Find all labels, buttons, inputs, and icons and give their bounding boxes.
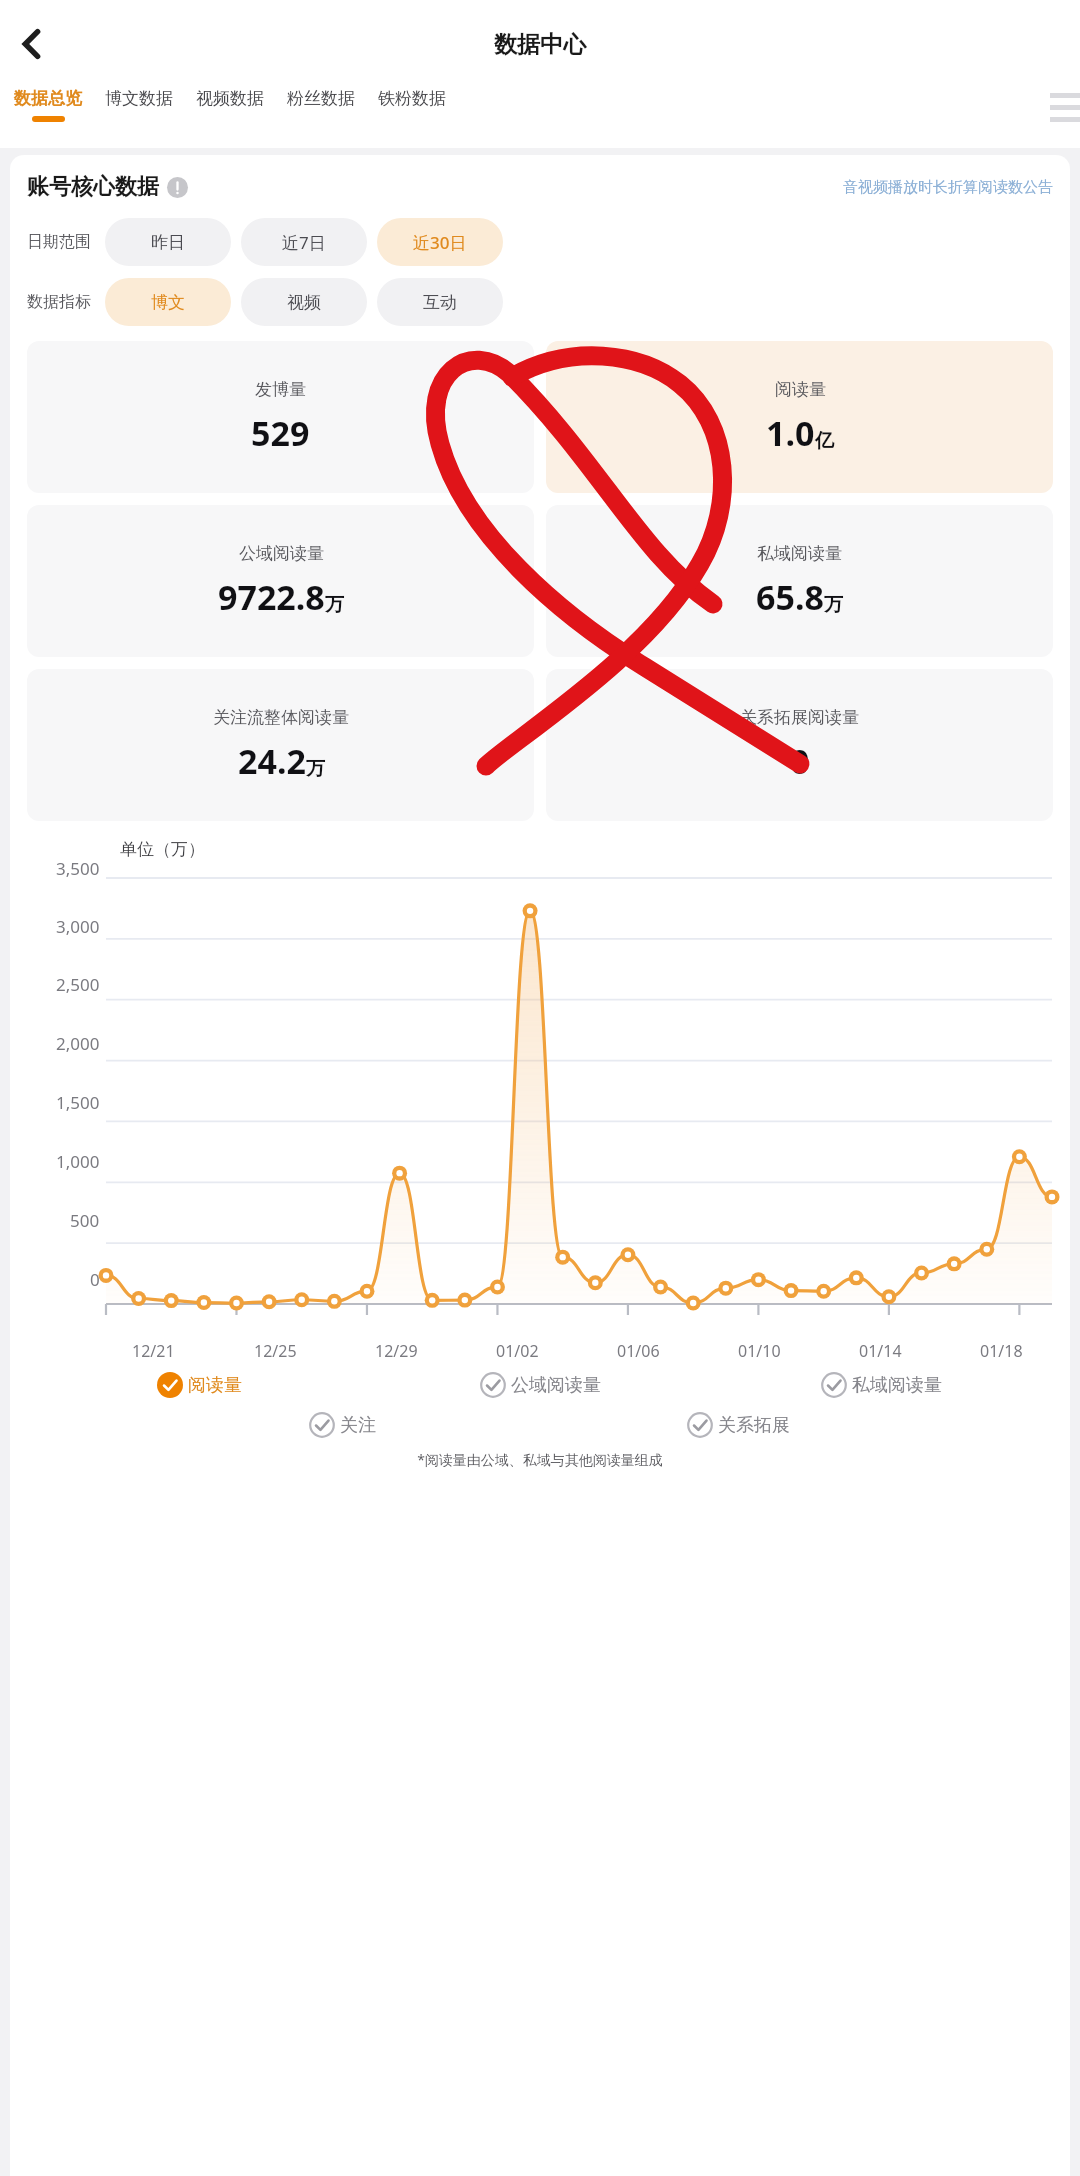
button[interactable]: 关系拓展 [568, 1412, 909, 1438]
button[interactable]: 视频数据 [196, 88, 264, 109]
staticText: 私域阅读量 [757, 543, 842, 564]
staticText: 01/06 [617, 1340, 660, 1362]
button[interactable]: 昨日 [105, 218, 231, 266]
staticText: 阅读量 [188, 1374, 242, 1397]
staticText: 粉丝数据 [287, 88, 355, 109]
staticText: 0 [90, 1268, 100, 1291]
button[interactable]: 公域阅读量 [370, 1372, 711, 1398]
staticText: 01/10 [738, 1340, 781, 1362]
staticText: 近30日 [413, 231, 467, 254]
staticText: 博文数据 [105, 88, 173, 109]
staticText: 万 [824, 593, 843, 617]
staticText: 关注 [340, 1414, 376, 1437]
staticText: 12/29 [375, 1340, 418, 1362]
button[interactable]: 博文数据 [105, 88, 173, 109]
staticText: 65.8 [756, 574, 824, 620]
staticText: 万 [325, 593, 344, 617]
staticText: 01/18 [980, 1340, 1023, 1362]
staticText: 关系拓展阅读量 [740, 707, 859, 728]
staticText: 01/02 [496, 1340, 539, 1362]
staticText: 数据指标 [27, 292, 91, 312]
staticText: 单位（万） [120, 839, 205, 860]
button[interactable]: 视频 [241, 278, 367, 326]
button[interactable]: 阅读量 [28, 1372, 370, 1398]
staticText: 01/14 [859, 1340, 902, 1362]
button[interactable]: 近30日 [377, 218, 503, 266]
staticText: 博文 [151, 292, 185, 313]
staticText: 关注流整体阅读量 [213, 707, 349, 728]
staticText: 日期范围 [27, 232, 91, 252]
staticText: 近7日 [282, 231, 326, 254]
staticText: 529 [251, 410, 310, 456]
staticText: *阅读量由公域、私域与其他阅读量组成 [10, 1450, 1070, 1469]
button[interactable]: More tabs [1050, 93, 1080, 129]
button[interactable]: 音视频播放时长折算阅读数公告 [843, 178, 1053, 197]
staticText: 2,000 [56, 1032, 100, 1055]
staticText: 12/21 [132, 1340, 175, 1362]
staticText: 视频数据 [196, 88, 264, 109]
staticText: 1,500 [56, 1091, 100, 1114]
button[interactable]: 近7日 [241, 218, 367, 266]
button[interactable]: 私域阅读量 [711, 1372, 1052, 1398]
staticText: 3,500 [56, 857, 100, 880]
button[interactable]: Info [167, 177, 188, 198]
button[interactable]: 公域阅读量 [27, 505, 534, 657]
button[interactable]: Back [4, 16, 60, 72]
button[interactable]: 关注流整体阅读量 [27, 669, 534, 821]
staticText: 12/25 [254, 1340, 297, 1362]
button[interactable]: 发博量 [27, 341, 534, 493]
button[interactable]: 私域阅读量 [546, 505, 1053, 657]
button[interactable]: 数据总览 [14, 88, 82, 122]
staticText: 数据总览 [14, 88, 82, 109]
button[interactable]: 铁粉数据 [378, 88, 446, 109]
button[interactable]: 互动 [377, 278, 503, 326]
staticText: 亿 [815, 429, 834, 453]
staticText: 发博量 [255, 379, 306, 400]
button[interactable]: 粉丝数据 [287, 88, 355, 109]
button[interactable]: 阅读量 [546, 341, 1053, 493]
staticText: 公域阅读量 [239, 543, 324, 564]
staticText: 阅读量 [775, 379, 826, 400]
staticText: 昨日 [151, 232, 185, 253]
staticText: 私域阅读量 [852, 1374, 942, 1397]
staticText: 数据中心 [494, 30, 586, 59]
button[interactable]: 博文 [105, 278, 231, 326]
button[interactable]: 关注 [172, 1412, 513, 1438]
staticText: 万 [306, 757, 325, 781]
staticText: 9722.8 [218, 574, 325, 620]
staticText: 公域阅读量 [511, 1374, 601, 1397]
staticText: 500 [70, 1209, 100, 1232]
staticText: 账号核心数据 [27, 173, 159, 201]
staticText: 3,000 [56, 915, 100, 938]
staticText: 0 [790, 738, 810, 784]
staticText: 关系拓展 [718, 1414, 790, 1437]
staticText: 2,500 [56, 973, 100, 996]
staticText: 1.0 [766, 410, 815, 456]
button[interactable]: 关系拓展阅读量 [546, 669, 1053, 821]
staticText: 铁粉数据 [378, 88, 446, 109]
staticText: 视频 [287, 292, 321, 313]
staticText: 1,000 [56, 1150, 100, 1173]
staticText: 互动 [423, 292, 457, 313]
staticText: 24.2 [238, 738, 306, 784]
